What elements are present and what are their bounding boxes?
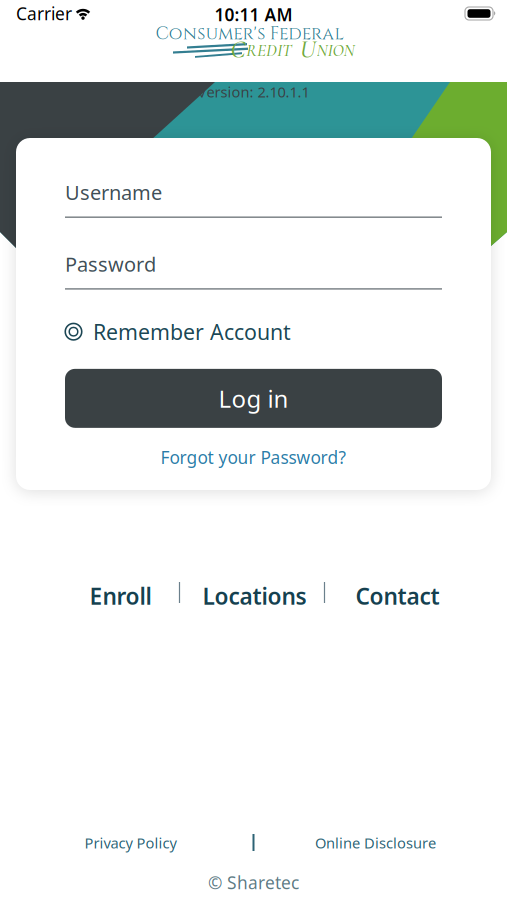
button[interactable]: Password <box>65 251 442 290</box>
staticText: C <box>230 34 245 65</box>
staticText: 10:11 AM <box>214 3 292 26</box>
staticText: Carrier <box>16 2 72 25</box>
staticText: Consumer's Federal <box>155 22 344 46</box>
staticText: Password <box>65 251 156 277</box>
staticText: Log in <box>218 382 288 414</box>
button[interactable]: Username <box>65 179 442 218</box>
button[interactable]: Enroll <box>89 581 151 611</box>
staticText: Privacy Policy <box>84 833 176 852</box>
button[interactable]: Log in <box>65 369 442 428</box>
staticText: Contact <box>355 581 439 611</box>
staticText: Username <box>65 179 162 206</box>
button[interactable]: Remember Account <box>65 317 291 346</box>
staticText: Locations <box>202 581 306 611</box>
staticText: NION <box>316 40 354 61</box>
staticText: Forgot your Password? <box>160 446 346 469</box>
staticText: Online Disclosure <box>315 833 436 852</box>
button[interactable]: Contact <box>355 581 439 611</box>
staticText: Version: 2.10.1.1 <box>197 82 309 101</box>
staticText: Remember Account <box>93 317 291 346</box>
staticText: REDIT <box>246 40 292 61</box>
button[interactable]: Privacy Policy <box>84 833 176 852</box>
button[interactable]: Locations <box>202 581 306 611</box>
staticText: U <box>300 34 316 65</box>
staticText: Enroll <box>89 581 151 611</box>
button[interactable]: Online Disclosure <box>315 833 436 852</box>
button[interactable]: Forgot your Password? <box>65 446 442 469</box>
staticText: © Sharetec <box>208 871 299 894</box>
